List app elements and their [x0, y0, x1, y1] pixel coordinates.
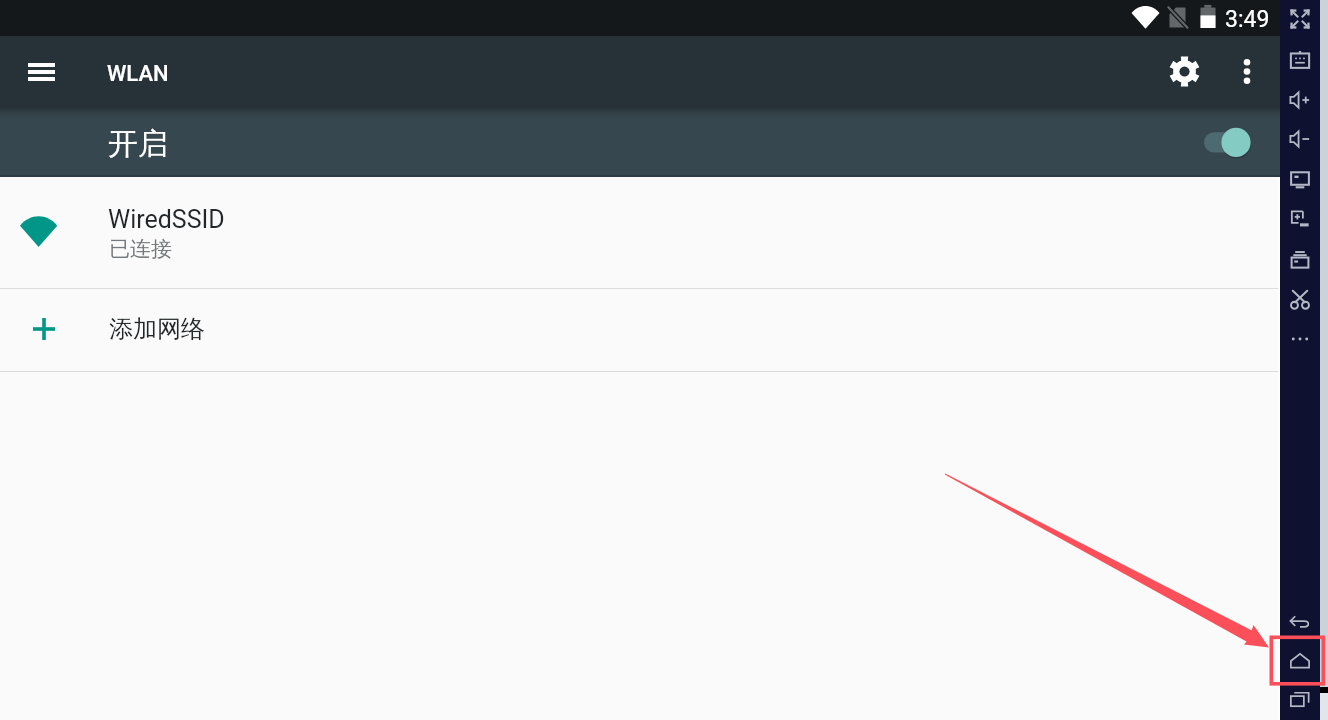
button[interactable]: 添加网络 — [0, 289, 1280, 371]
button[interactable]: Keyboard — [1280, 39, 1320, 79]
staticText: WiredSSID — [108, 205, 225, 234]
button[interactable]: Recent apps — [1280, 679, 1320, 719]
button[interactable]: Settings — [1160, 47, 1208, 95]
button[interactable]: Full screen — [1280, 0, 1320, 39]
staticText: 已连接 — [109, 236, 172, 262]
button[interactable]: Volume down — [1280, 119, 1320, 159]
button[interactable]: Take screenshot — [1280, 239, 1320, 279]
staticText: 3:49 — [1225, 6, 1270, 33]
staticText: 开启 — [108, 125, 168, 163]
button[interactable]: Open navigation menu — [17, 47, 66, 96]
button[interactable]: More — [1280, 319, 1320, 359]
button[interactable]: Install APK — [1280, 199, 1320, 239]
staticText: 添加网络 — [109, 314, 205, 344]
button[interactable]: Back — [1280, 602, 1320, 642]
button[interactable]: Volume up — [1280, 80, 1320, 120]
button[interactable]: More options — [1223, 47, 1271, 95]
button[interactable]: Home — [1280, 641, 1320, 681]
button[interactable]: 开启 — [0, 107, 1280, 177]
button[interactable]: WiredSSID — [0, 177, 1280, 288]
staticText: WLAN — [107, 61, 169, 87]
button[interactable]: Rotate screen — [1280, 159, 1320, 199]
button[interactable]: Snip — [1280, 279, 1320, 319]
